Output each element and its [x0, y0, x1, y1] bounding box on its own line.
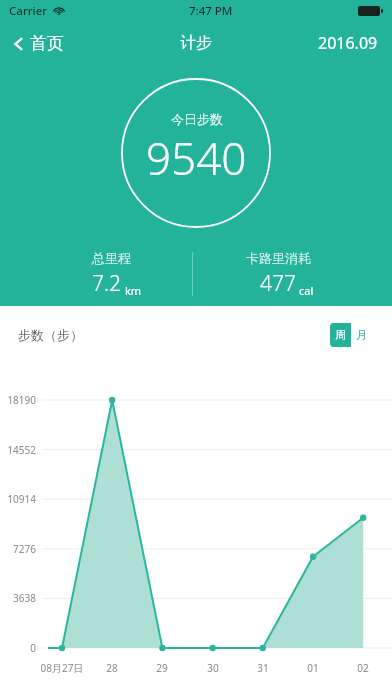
staticText: cal — [299, 283, 314, 298]
staticText: 9540 — [146, 128, 247, 188]
staticText: 卡路里消耗 — [246, 250, 311, 266]
staticText: km — [125, 283, 142, 298]
staticText: 29 — [134, 661, 190, 675]
staticText: 30 — [185, 661, 241, 675]
button[interactable]: 2016.09 — [304, 24, 392, 62]
staticText: 08月27日 — [34, 661, 90, 675]
staticText: 7276 — [0, 542, 36, 556]
staticText: 计步 — [180, 33, 212, 53]
staticText: 10914 — [0, 492, 36, 506]
staticText: Carrier — [9, 3, 48, 19]
staticText: 7:47 PM — [189, 3, 233, 19]
staticText: 477 — [260, 269, 296, 298]
staticText: 0 — [0, 641, 36, 655]
staticText: 步数（步） — [18, 327, 83, 343]
staticText: 首页 — [30, 33, 64, 54]
staticText: 18190 — [0, 393, 36, 407]
staticText: 月 — [356, 328, 367, 342]
staticText: 02 — [335, 661, 391, 675]
staticText: 3638 — [0, 591, 36, 605]
staticText: 14552 — [0, 443, 36, 457]
staticText: 今日步数 — [171, 111, 223, 127]
button[interactable]: 月 — [351, 323, 372, 347]
staticText: 01 — [285, 661, 341, 675]
button[interactable]: Back to home — [0, 26, 76, 61]
staticText: 总里程 — [92, 250, 131, 266]
staticText: 31 — [235, 661, 291, 675]
staticText: 周 — [335, 328, 346, 342]
button[interactable]: 周 — [330, 323, 351, 347]
staticText: 7.2 — [92, 269, 122, 298]
staticText: 28 — [84, 661, 140, 675]
